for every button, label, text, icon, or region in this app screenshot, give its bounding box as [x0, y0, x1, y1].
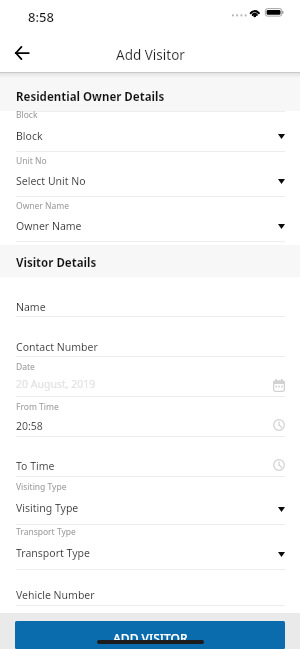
button[interactable]: Block: [16, 129, 43, 143]
button[interactable]: Name: [16, 300, 46, 314]
button[interactable]: Open dropdown: [278, 507, 285, 512]
button[interactable]: Visiting Type: [16, 501, 79, 515]
button[interactable]: 20:58: [16, 419, 43, 433]
staticText: From Time: [16, 401, 59, 413]
staticText: Owner Name: [16, 200, 70, 212]
button[interactable]: Open dropdown: [278, 134, 285, 139]
button[interactable]: Owner Name: [16, 219, 82, 233]
staticText: ADD VISITOR: [113, 630, 188, 646]
staticText: Add Visitor: [116, 46, 185, 64]
button[interactable]: ADD VISITOR: [15, 621, 285, 649]
button[interactable]: Pick time: [273, 419, 285, 431]
button[interactable]: Transport Type: [16, 546, 90, 560]
button[interactable]: Open dropdown: [278, 179, 285, 184]
staticText: Block: [16, 109, 38, 121]
button[interactable]: Open dropdown: [278, 552, 285, 557]
staticText: Visitor Details: [16, 255, 97, 271]
button[interactable]: Back: [9, 40, 35, 66]
button[interactable]: 20 August, 2019: [16, 377, 96, 391]
button[interactable]: Select Unit No: [16, 174, 86, 188]
button[interactable]: Contact Number: [16, 340, 98, 354]
staticText: Visiting Type: [16, 481, 67, 493]
button[interactable]: To Time: [16, 459, 55, 473]
staticText: Unit No: [16, 155, 47, 167]
staticText: Date: [16, 361, 35, 373]
staticText: Transport Type: [16, 526, 76, 538]
button[interactable]: Pick time: [273, 459, 285, 471]
button[interactable]: Open dropdown: [278, 224, 285, 229]
staticText: Residential Owner Details: [16, 89, 165, 105]
button[interactable]: Pick date: [273, 379, 285, 392]
staticText: 8:58: [28, 8, 54, 26]
button[interactable]: Vehicle Number: [16, 588, 95, 602]
